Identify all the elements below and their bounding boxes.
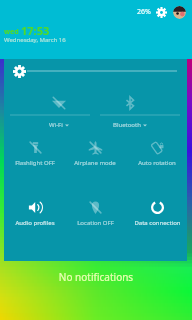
staticText: 26% (137, 7, 151, 17)
button[interactable]: Auto rotation (127, 140, 187, 174)
staticText: Wi-Fi (49, 121, 63, 129)
button[interactable]: Settings (156, 7, 167, 18)
staticText: Data connection (134, 219, 181, 227)
staticText: Bluetooth (113, 121, 141, 129)
button[interactable]: Flashlight OFF (5, 140, 65, 174)
button[interactable]: Audio profiles (5, 200, 65, 234)
staticText: wed (4, 27, 19, 37)
staticText: Airplane mode (74, 159, 116, 167)
button[interactable]: Wi-Fi (29, 120, 89, 130)
staticText: 17:53 (21, 23, 50, 38)
staticText: Location OFF (77, 219, 114, 227)
staticText: Auto rotation (138, 159, 176, 167)
button[interactable]: User profile (173, 6, 186, 19)
button[interactable]: Location OFF (65, 200, 125, 234)
staticText: No notifications (0, 270, 192, 284)
staticText: Audio profiles (15, 219, 55, 227)
button[interactable]: Data connection (127, 200, 187, 234)
staticText: Wednesday, March 16 (4, 36, 66, 44)
staticText: Flashlight OFF (15, 159, 55, 167)
button[interactable]: Airplane mode (65, 140, 125, 174)
button[interactable]: Bluetooth (100, 120, 160, 130)
